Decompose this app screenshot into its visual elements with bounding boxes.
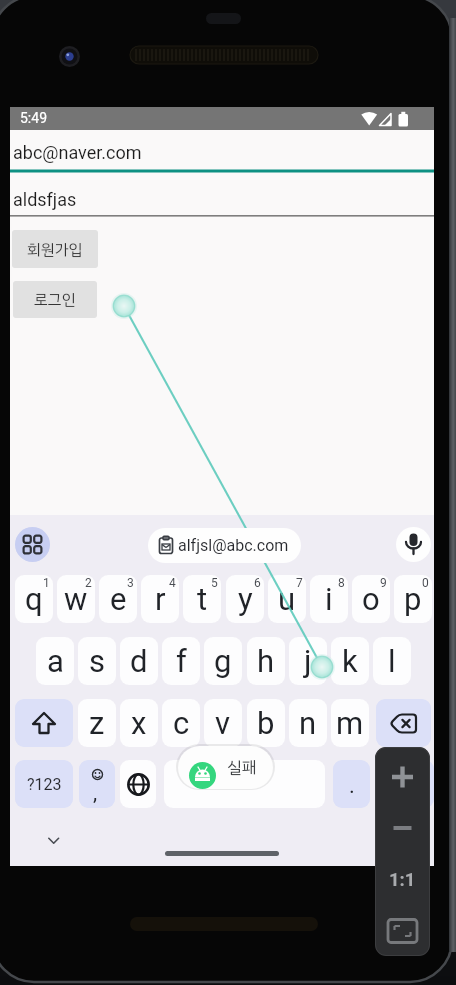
button[interactable]: 회원가입: [12, 230, 98, 268]
staticText: v: [215, 705, 231, 741]
staticText: 4: [169, 576, 176, 590]
button[interactable]: t: [183, 575, 221, 623]
button[interactable]: [164, 760, 325, 808]
staticText: y: [238, 581, 253, 617]
button[interactable]: 1:1: [375, 860, 430, 900]
staticText: ,: [93, 781, 98, 806]
button[interactable]: v: [204, 699, 242, 747]
staticText: p: [404, 581, 422, 617]
button[interactable]: m: [331, 699, 369, 747]
button[interactable]: w: [57, 575, 95, 623]
staticText: 9: [380, 576, 387, 590]
staticText: 7: [296, 576, 303, 590]
staticText: s: [89, 643, 105, 679]
button[interactable]: [375, 757, 430, 797]
button[interactable]: j: [289, 637, 327, 685]
staticText: c: [173, 705, 190, 741]
staticText: f: [176, 643, 187, 679]
button[interactable]: q: [15, 575, 53, 623]
button[interactable]: h: [247, 637, 285, 685]
button[interactable]: ,: [79, 760, 115, 808]
button[interactable]: 로그인: [13, 281, 97, 318]
staticText: 2: [85, 576, 92, 590]
button[interactable]: [376, 699, 431, 747]
staticText: j: [304, 643, 312, 679]
button[interactable]: p: [394, 575, 432, 623]
button[interactable]: f: [162, 637, 200, 685]
staticText: u: [278, 581, 296, 617]
staticText: 6: [254, 576, 261, 590]
staticText: k: [342, 643, 358, 679]
staticText: .: [349, 773, 355, 799]
staticText: aldsfjas: [13, 189, 77, 210]
staticText: alfjsl@abc.com: [178, 536, 289, 555]
button[interactable]: l: [373, 637, 411, 685]
staticText: 5:49: [20, 110, 47, 126]
staticText: x: [131, 705, 147, 741]
button[interactable]: o: [352, 575, 390, 623]
staticText: t: [197, 581, 208, 617]
staticText: e: [110, 581, 127, 617]
button[interactable]: n: [289, 699, 327, 747]
staticText: 회원가입: [27, 238, 83, 261]
button[interactable]: r: [141, 575, 179, 623]
staticText: i: [325, 581, 333, 617]
button[interactable]: ?123: [15, 760, 73, 808]
staticText: 로그인: [34, 288, 76, 311]
staticText: 3: [127, 576, 134, 590]
staticText: abc@naver.com: [13, 142, 142, 163]
staticText: d: [130, 643, 148, 679]
staticText: n: [299, 705, 317, 741]
button[interactable]: [375, 911, 430, 951]
staticText: 0: [422, 576, 429, 590]
button[interactable]: k: [331, 637, 369, 685]
button[interactable]: y: [226, 575, 264, 623]
button[interactable]: s: [78, 637, 116, 685]
staticText: l: [388, 643, 396, 679]
staticText: g: [214, 643, 232, 679]
staticText: b: [257, 705, 275, 741]
button[interactable]: alfjsl@abc.com: [148, 528, 301, 563]
button[interactable]: [15, 527, 50, 562]
button[interactable]: x: [120, 699, 158, 747]
button[interactable]: i: [310, 575, 348, 623]
staticText: a: [47, 643, 64, 679]
staticText: 1:1: [389, 869, 416, 891]
staticText: 5: [211, 576, 218, 590]
button[interactable]: c: [162, 699, 200, 747]
button[interactable]: abc@naver.com: [10, 133, 434, 172]
staticText: w: [64, 581, 88, 617]
staticText: 1: [43, 576, 50, 590]
button[interactable]: e: [99, 575, 137, 623]
staticText: 8: [338, 576, 345, 590]
button[interactable]: b: [247, 699, 285, 747]
button[interactable]: [396, 527, 431, 562]
button[interactable]: d: [120, 637, 158, 685]
button[interactable]: g: [204, 637, 242, 685]
staticText: m: [336, 705, 364, 741]
staticText: z: [89, 705, 105, 741]
staticText: o: [362, 581, 380, 617]
button[interactable]: [120, 760, 156, 808]
button[interactable]: z: [78, 699, 116, 747]
button[interactable]: .: [333, 760, 370, 808]
button[interactable]: u: [268, 575, 306, 623]
staticText: r: [155, 581, 166, 617]
button[interactable]: [375, 808, 430, 848]
staticText: ?123: [27, 775, 62, 794]
button[interactable]: [379, 760, 434, 808]
staticText: 실패: [227, 755, 257, 780]
button[interactable]: a: [36, 637, 74, 685]
button[interactable]: aldsfjas: [10, 180, 434, 217]
staticText: q: [25, 581, 43, 617]
staticText: h: [257, 643, 275, 679]
button[interactable]: [15, 699, 73, 747]
